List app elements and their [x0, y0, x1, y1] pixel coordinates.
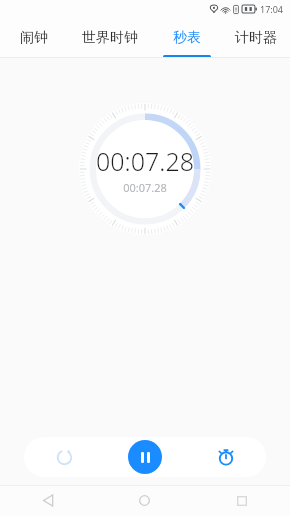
- button[interactable]: Recents: [193, 485, 290, 516]
- button[interactable]: Reset: [24, 437, 104, 477]
- button[interactable]: 世界时钟: [68, 18, 152, 58]
- button[interactable]: 闹钟: [0, 18, 68, 58]
- button[interactable]: 计时器: [221, 18, 290, 58]
- button[interactable]: Lap: [185, 437, 266, 477]
- button[interactable]: 秒表: [152, 18, 221, 58]
- staticText: 世界时钟: [82, 29, 138, 47]
- staticText: 17:04: [260, 3, 284, 15]
- staticText: 00:07.28: [96, 144, 194, 178]
- button[interactable]: Pause: [128, 440, 162, 474]
- staticText: 秒表: [173, 29, 201, 47]
- staticText: 00:07.28: [123, 180, 167, 195]
- staticText: 闹钟: [20, 29, 48, 47]
- button[interactable]: Home: [96, 485, 193, 516]
- staticText: 计时器: [235, 29, 277, 47]
- button[interactable]: Back: [0, 485, 96, 516]
